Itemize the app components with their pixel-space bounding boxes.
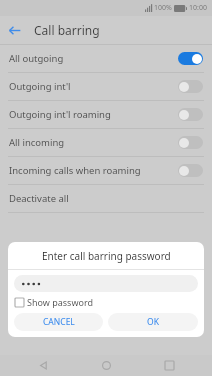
- button[interactable]: Home: [86, 355, 126, 376]
- button[interactable]: Recents: [149, 355, 189, 376]
- button[interactable]: All incoming: [0, 129, 212, 156]
- staticText: Outgoing int'l: [9, 80, 178, 93]
- button[interactable]: Incoming calls when roaming: [0, 157, 212, 184]
- button[interactable]: Off: [178, 108, 203, 121]
- button[interactable]: Back: [0, 16, 28, 44]
- staticText: Incoming calls when roaming: [9, 164, 178, 177]
- button[interactable]: Deactivate all: [0, 185, 212, 212]
- button[interactable]: Off: [178, 164, 203, 177]
- button[interactable]: Back: [23, 355, 63, 376]
- staticText: Outgoing int'l roaming: [9, 108, 178, 121]
- button[interactable]: On: [178, 52, 203, 65]
- staticText: CANCEL: [43, 316, 75, 328]
- button[interactable]: Outgoing int'l: [0, 73, 212, 100]
- staticText: Show password: [27, 296, 93, 308]
- button[interactable]: Off: [178, 136, 203, 149]
- staticText: Enter call barring password: [42, 249, 171, 263]
- button[interactable]: OK: [108, 313, 198, 331]
- staticText: Call barring: [34, 22, 100, 38]
- button[interactable]: Password field: [14, 275, 198, 292]
- button[interactable]: Outgoing int'l roaming: [0, 101, 212, 128]
- button[interactable]: Off: [178, 80, 203, 93]
- staticText: 10:00: [189, 3, 207, 13]
- button[interactable]: Show password: [15, 296, 93, 308]
- button[interactable]: All outgoing: [0, 45, 212, 72]
- staticText: 100%: [154, 3, 172, 13]
- staticText: All incoming: [9, 136, 178, 149]
- staticText: OK: [147, 316, 159, 328]
- staticText: Deactivate all: [9, 192, 69, 205]
- staticText: All outgoing: [9, 52, 178, 65]
- button[interactable]: CANCEL: [14, 313, 103, 331]
